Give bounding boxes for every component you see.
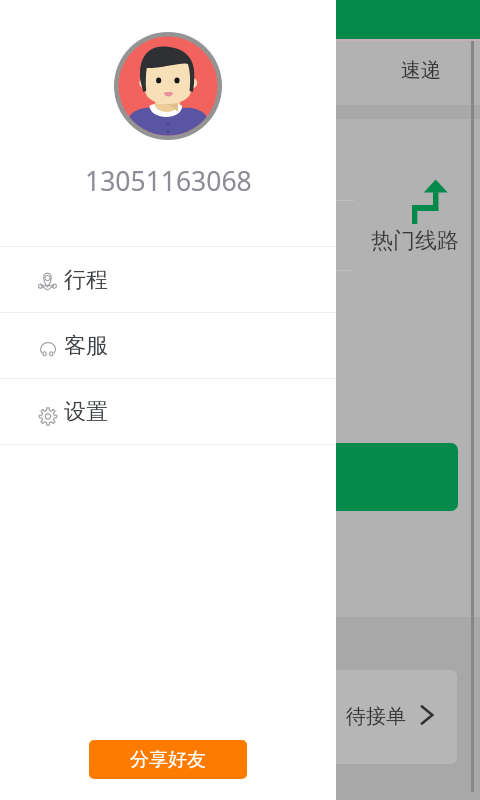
staticText: 待接单 (346, 704, 406, 729)
staticText: 行程 (64, 266, 108, 294)
button[interactable]: 分享好友 (89, 740, 247, 779)
button[interactable]: Settings (0, 379, 336, 444)
button[interactable]: 速递 (383, 53, 459, 87)
staticText: 13051163068 (85, 163, 252, 199)
staticText: 设置 (64, 398, 108, 426)
button[interactable]: 待接单 (318, 670, 457, 764)
staticText: 客服 (64, 332, 108, 360)
staticText: 速递 (401, 58, 441, 83)
staticText: 分享好友 (130, 748, 206, 772)
staticText: 热门线路 (371, 227, 459, 255)
other: Open pending orders (420, 705, 433, 725)
button[interactable]: Customer service (0, 313, 336, 378)
button[interactable] (330, 443, 458, 511)
button[interactable]: Trips (0, 247, 336, 312)
other: Hot routes (412, 179, 448, 224)
